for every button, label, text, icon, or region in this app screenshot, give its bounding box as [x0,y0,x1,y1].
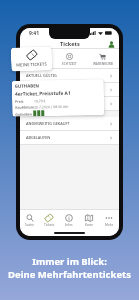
button[interactable]: Mehr [99,210,119,228]
button[interactable]: Profil [106,39,116,49]
button[interactable]: GUTHABEN [12,79,104,117]
button[interactable]: Tickets [39,210,59,228]
staticText: ECHTZEIT [62,62,77,66]
staticText: Guthaben [15,111,33,117]
button[interactable]: Infos [59,210,79,228]
staticText: Karte [85,223,94,227]
staticText: Deine Mehrfahrtentickets [8,268,131,281]
staticText: ANDERWEITIG GEKAUFT [26,121,70,126]
staticText: ABGELAUFEN [26,135,51,140]
button[interactable]: Suche [20,210,39,228]
staticText: Tickets [60,40,80,48]
button[interactable]: 4erTicket_Preisstufe B3 [20,97,119,110]
button[interactable]: AKTUELL GÜLTIG [20,69,119,82]
staticText: Preis [15,98,34,104]
staticText: 20.7.2024 | 08:30 Uhr [34,104,69,109]
staticText: Suche [25,223,35,227]
button[interactable]: FAHRPLAN [20,49,53,68]
staticText: Tickets [44,223,55,227]
staticText: Infos [65,223,73,227]
button[interactable]: ABGELAUFEN [20,131,119,144]
button[interactable]: WARENKORB [86,49,119,68]
staticText: MEINE TICKETS [16,61,47,69]
button[interactable]: MEINE TICKETS [11,46,52,72]
staticText: Kaufdatum [15,104,34,110]
button[interactable]: 4erTicket_Preisstufe A1 [20,83,119,96]
staticText: AKTUELL GÜLTIG [26,73,57,78]
staticText: 4erTicket_Preisstufe A1 [26,87,69,92]
staticText: WARENKORB [93,62,113,66]
staticText: Mehr [105,223,113,227]
staticText: 4erTicket_Preisstufe B3 [26,101,69,106]
button[interactable]: ANDERWEITIG GEKAUFT [20,117,119,130]
staticText: 4erTicket_Preisstufe A1 [15,90,71,98]
button[interactable]: Karte [79,210,99,228]
staticText: GUTHABEN [15,82,40,89]
staticText: 9:41 [29,30,39,37]
staticText: 10,70 € [34,98,46,103]
staticText: Immer im Blick: [32,255,107,268]
button[interactable]: ECHTZEIT [53,49,86,68]
staticText: FAHRPLAN [28,62,45,66]
